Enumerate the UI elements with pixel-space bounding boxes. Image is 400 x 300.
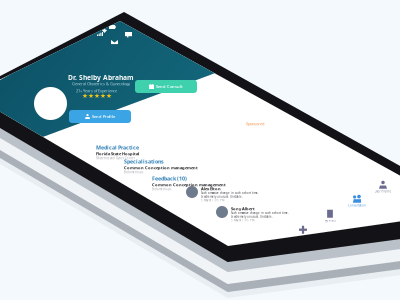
staticText: Dr. Shelby Abraham xyxy=(68,73,134,82)
staticText: 5 May at 1:05 PM xyxy=(201,198,224,202)
button[interactable]: Messages xyxy=(111,39,118,45)
button[interactable]: User Profile xyxy=(371,180,395,194)
button[interactable]: My Doctor xyxy=(291,225,315,239)
staticText: General Obstetrics & Gynecology xyxy=(72,81,130,86)
staticText: Feedback (10) xyxy=(152,175,187,182)
staticText: My Doctor xyxy=(296,235,309,238)
staticText: Send Profile xyxy=(92,114,115,119)
staticText: My Visits xyxy=(324,219,335,222)
staticText: Alex Elton xyxy=(201,186,221,191)
button[interactable]: Send Profile xyxy=(69,110,131,123)
staticText: Sony Albert xyxy=(231,206,255,211)
staticText: Sponsored xyxy=(246,121,264,126)
staticText: Is extremely unusual. Unstable. xyxy=(201,195,243,198)
button[interactable]: Consultation xyxy=(345,194,369,208)
button[interactable]: Specialisations xyxy=(124,158,198,174)
staticText: Florida State Hospital xyxy=(96,151,139,156)
button[interactable]: My Visits xyxy=(318,209,342,223)
staticText: Common Conception management xyxy=(152,182,226,187)
staticText: ★★★★★ xyxy=(82,92,112,100)
staticText: Send Consult xyxy=(156,84,183,89)
staticText: Obstetrics and Gynec Center xyxy=(96,156,135,160)
button[interactable]: Home xyxy=(267,238,291,252)
staticText: Consultation xyxy=(348,204,366,207)
staticText: Such a massive change in such a short ti… xyxy=(231,211,289,215)
staticText: Specialisations xyxy=(124,158,164,165)
staticText: User Profile xyxy=(374,190,391,193)
staticText: Such a massive change in such a short ti… xyxy=(201,191,259,195)
staticText: Endometriosis xyxy=(152,187,171,191)
staticText: Is extremely unusual. Unstable. xyxy=(231,215,273,218)
button[interactable]: Feedback (10) xyxy=(152,175,226,191)
staticText: Common Conception management xyxy=(124,165,198,170)
button[interactable]: Chat xyxy=(125,32,132,38)
staticText: 5 May at 1:05 PM xyxy=(231,218,254,222)
button[interactable]: Sony Albert xyxy=(216,206,289,222)
button[interactable]: Send Consult xyxy=(135,80,197,93)
staticText: 21+ Years of Experience xyxy=(76,88,117,93)
staticText: Endometriosis xyxy=(124,170,143,174)
staticText: Medical Practice xyxy=(96,144,139,151)
button[interactable]: Alex Elton xyxy=(186,186,259,202)
button[interactable]: Medical Practice xyxy=(96,144,139,160)
